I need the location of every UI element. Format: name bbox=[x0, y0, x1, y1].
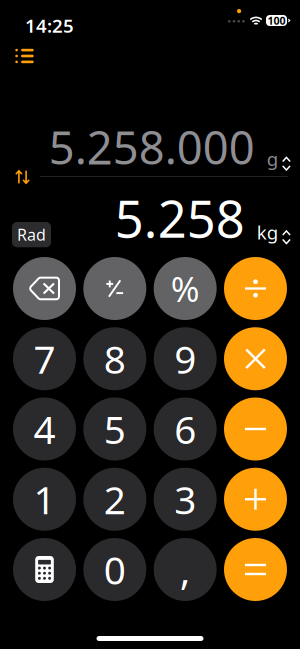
button[interactable]: 9 bbox=[154, 327, 217, 390]
button[interactable]: Plus minus bbox=[83, 257, 146, 320]
staticText: 7 bbox=[33, 333, 55, 384]
button[interactable]: Percent bbox=[154, 257, 217, 320]
button[interactable]: 1 bbox=[13, 468, 76, 531]
button[interactable]: Rad bbox=[12, 222, 51, 247]
staticText: g bbox=[267, 146, 278, 171]
button[interactable]: , bbox=[154, 538, 217, 601]
staticText: 4 bbox=[33, 403, 55, 455]
staticText: 9 bbox=[174, 333, 196, 384]
staticText: 6 bbox=[174, 403, 196, 455]
staticText: 3 bbox=[174, 474, 196, 525]
button[interactable]: History bbox=[7, 41, 41, 71]
staticText: , bbox=[180, 543, 191, 596]
staticText: Rad bbox=[17, 224, 46, 245]
staticText: % bbox=[171, 265, 200, 311]
button[interactable]: 4 bbox=[13, 397, 76, 460]
staticText: 5 bbox=[104, 403, 126, 455]
button[interactable]: 8 bbox=[83, 327, 146, 390]
staticText: kg bbox=[257, 220, 278, 245]
button[interactable]: 5 bbox=[83, 397, 146, 460]
button[interactable]: Add bbox=[224, 468, 287, 531]
staticText: 14:25 bbox=[25, 13, 74, 38]
button[interactable]: 7 bbox=[13, 327, 76, 390]
button[interactable]: Divide bbox=[224, 257, 287, 320]
button[interactable]: 3 bbox=[154, 468, 217, 531]
staticText: 2 bbox=[104, 474, 126, 525]
button[interactable]: 0 bbox=[83, 538, 146, 601]
button[interactable]: Equals bbox=[224, 538, 287, 601]
staticText: 8 bbox=[104, 333, 126, 384]
button[interactable]: Multiply bbox=[224, 327, 287, 390]
staticText: 100 bbox=[267, 13, 285, 28]
button[interactable]: Swap units bbox=[8, 164, 36, 190]
button[interactable]: Subtract bbox=[224, 397, 287, 460]
button[interactable]: 2 bbox=[83, 468, 146, 531]
staticText: 5.258 bbox=[115, 184, 245, 252]
staticText: 0 bbox=[104, 544, 126, 595]
staticText: 5.258.000 bbox=[49, 117, 255, 177]
button[interactable]: Delete bbox=[13, 257, 76, 320]
button[interactable]: 6 bbox=[154, 397, 217, 460]
staticText: 1 bbox=[33, 474, 55, 525]
button[interactable]: Calculator bbox=[13, 538, 76, 601]
